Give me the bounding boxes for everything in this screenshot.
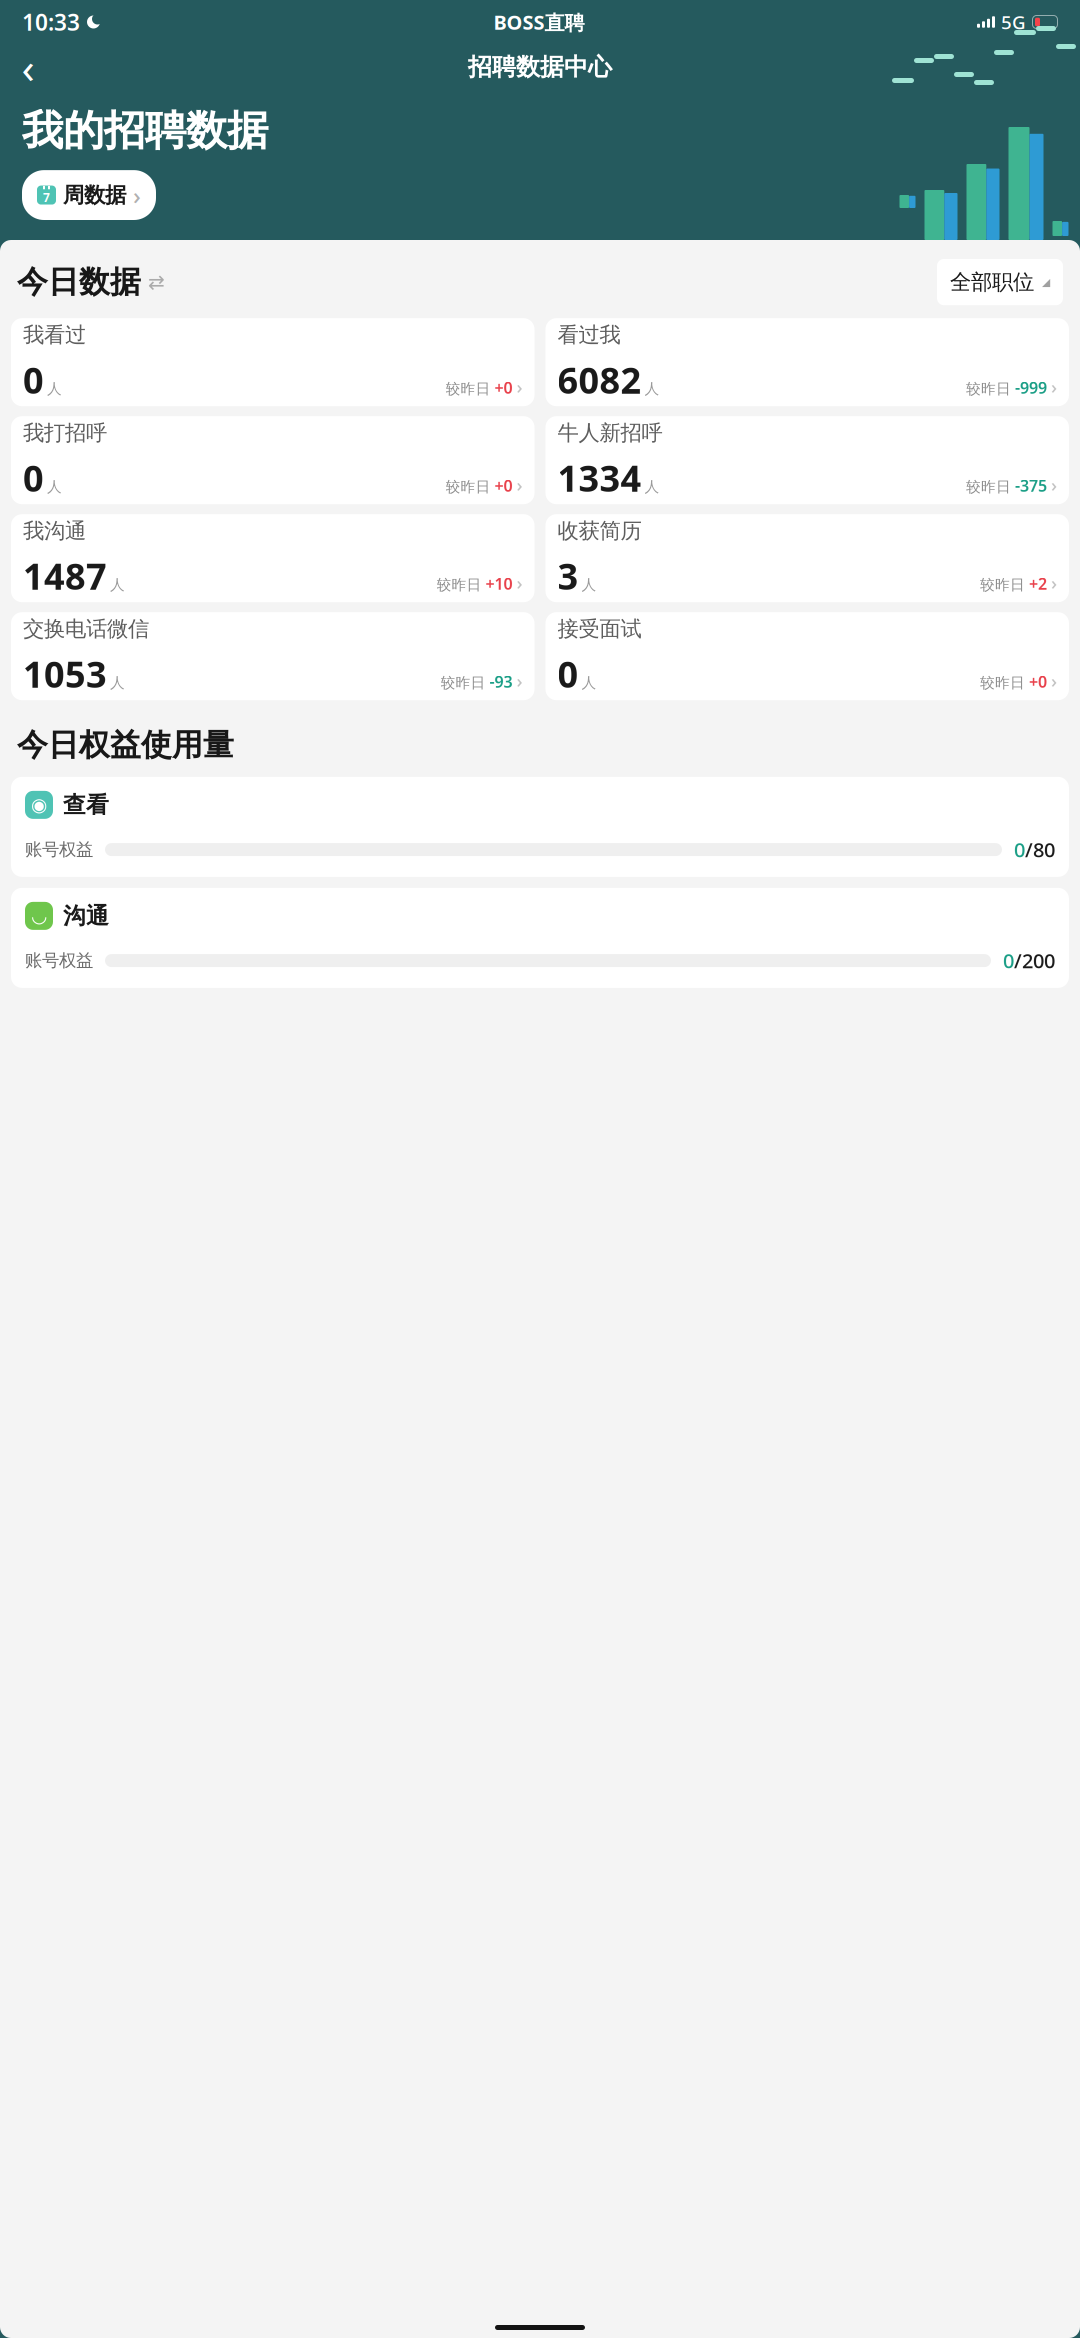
staticText: 6082 <box>557 356 641 404</box>
staticText: 0 <box>1003 947 1014 974</box>
staticText: 0 <box>23 454 44 502</box>
staticText: 账号权益 <box>25 950 93 971</box>
staticText: +2 <box>1029 573 1047 594</box>
staticText: 0 <box>1014 836 1025 863</box>
staticText: › <box>1051 472 1057 497</box>
staticText: 较昨日 <box>966 380 1011 398</box>
staticText: 较昨日 <box>445 380 490 398</box>
button[interactable]: 交换电话微信 <box>11 612 534 700</box>
staticText: 今日权益使用量 <box>17 726 234 764</box>
staticText: 账号权益 <box>25 839 93 860</box>
staticText: +0 <box>494 475 512 496</box>
staticText: › <box>516 668 522 693</box>
staticText: 人 <box>644 478 659 496</box>
staticText: 我沟通 <box>23 518 86 544</box>
staticText: 收获简历 <box>557 518 641 544</box>
staticText: 3 <box>557 552 578 600</box>
staticText: ◢ <box>1042 276 1050 288</box>
staticText: › <box>1051 570 1057 595</box>
staticText: 较昨日 <box>980 674 1025 692</box>
staticText: 人 <box>581 674 596 692</box>
staticText: 我看过 <box>23 322 86 348</box>
staticText: › <box>516 374 522 399</box>
button[interactable]: 我看过 <box>11 318 534 406</box>
staticText: › <box>1051 668 1057 693</box>
staticText: 周数据 <box>63 182 126 208</box>
staticText: /200 <box>1014 947 1055 974</box>
staticText: 10:33 <box>22 7 80 37</box>
staticText: BOSS直聘 <box>493 9 584 35</box>
staticText: 较昨日 <box>445 478 490 496</box>
staticText: 人 <box>47 478 62 496</box>
staticText: ⇄ <box>148 271 165 293</box>
staticText: 招聘数据中心 <box>468 52 612 82</box>
staticText: 较昨日 <box>966 478 1011 496</box>
staticText: 5G <box>1001 10 1026 34</box>
staticText: -999 <box>1015 377 1047 398</box>
staticText: 较昨日 <box>436 576 481 594</box>
staticText: 人 <box>110 576 125 594</box>
staticText: 人 <box>110 674 125 692</box>
staticText: › <box>516 472 522 497</box>
button[interactable]: 我打招呼 <box>11 416 534 504</box>
staticText: › <box>133 179 141 211</box>
staticText: -93 <box>489 671 512 692</box>
button[interactable]: 全部职位 <box>937 259 1063 305</box>
staticText: 今日数据 <box>17 263 141 301</box>
button[interactable]: 牛人新招呼 <box>545 416 1069 504</box>
staticText: 7 <box>43 189 50 205</box>
staticText: 查看 <box>63 791 109 819</box>
staticText: -375 <box>1015 475 1047 496</box>
staticText: +0 <box>494 377 512 398</box>
staticText: 1053 <box>23 650 107 698</box>
staticText: ◉ <box>31 794 47 815</box>
staticText: /80 <box>1025 836 1055 863</box>
button[interactable]: ◡ <box>11 888 1069 988</box>
staticText: 较昨日 <box>980 576 1025 594</box>
staticText: 看过我 <box>557 322 620 348</box>
staticText: 0 <box>557 650 578 698</box>
staticText: 人 <box>47 380 62 398</box>
staticText: 1334 <box>557 454 641 502</box>
staticText: +10 <box>485 573 512 594</box>
staticText: › <box>516 570 522 595</box>
button[interactable]: 看过我 <box>545 318 1069 406</box>
button[interactable]: 7 <box>22 170 156 220</box>
staticText: 沟通 <box>63 902 109 930</box>
staticText: 我的招聘数据 <box>22 105 268 156</box>
staticText: › <box>1051 374 1057 399</box>
staticText: 交换电话微信 <box>23 616 149 642</box>
button[interactable]: 我沟通 <box>11 514 534 602</box>
staticText: 1487 <box>23 552 107 600</box>
staticText: 我打招呼 <box>23 420 107 446</box>
staticText: 牛人新招呼 <box>557 420 662 446</box>
button[interactable]: 收获简历 <box>545 514 1069 602</box>
button[interactable]: ◉ <box>11 777 1069 877</box>
staticText: ‹ <box>21 39 34 95</box>
button[interactable]: 接受面试 <box>545 612 1069 700</box>
staticText: ◡ <box>32 905 46 926</box>
staticText: 人 <box>581 576 596 594</box>
button[interactable]: 返回 <box>6 45 50 89</box>
staticText: +0 <box>1029 671 1047 692</box>
staticText: 全部职位 <box>950 269 1034 295</box>
staticText: 0 <box>23 356 44 404</box>
staticText: 接受面试 <box>557 616 641 642</box>
staticText: 人 <box>644 380 659 398</box>
staticText: 较昨日 <box>440 674 485 692</box>
